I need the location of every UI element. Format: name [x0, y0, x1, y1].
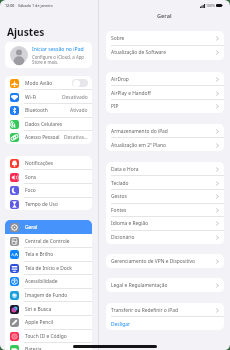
- button[interactable]: Legal e Regulamentação: [106, 278, 224, 292]
- button[interactable]: Gerenciamento de VPN e Dispositivo: [106, 254, 224, 268]
- staticText: Tempo de Uso: [25, 201, 58, 208]
- button[interactable]: PIP: [106, 99, 224, 113]
- button[interactable]: Central de Controle: [5, 234, 92, 248]
- button[interactable]: Data e Hora: [106, 162, 224, 176]
- staticText: Ajustes: [7, 25, 45, 39]
- button[interactable]: Acessibilidade: [5, 274, 92, 288]
- staticText: Dados Celulares: [25, 121, 63, 128]
- staticText: Sobre: [111, 35, 125, 42]
- button[interactable]: Wi-Fi: [5, 90, 92, 104]
- button[interactable]: Touch ID e Código: [5, 329, 92, 343]
- button[interactable]: Transferir ou Redefinir o iPad: [106, 303, 224, 317]
- staticText: Iniciar sessão no iPad: [32, 46, 84, 53]
- button[interactable]: Bluetooth: [5, 103, 92, 117]
- staticText: Notificações: [25, 160, 54, 167]
- button[interactable]: AirPlay e Handoff: [106, 86, 224, 100]
- staticText: Siri e Busca: [25, 306, 52, 313]
- staticText: PIP: [111, 103, 119, 110]
- button[interactable]: Notificações: [5, 156, 92, 170]
- button[interactable]: Tela de Início e Dock: [5, 261, 92, 275]
- staticText: Imagem de Fundo: [25, 292, 68, 299]
- button[interactable]: Idioma e Região: [106, 216, 224, 230]
- staticText: Desativa…: [64, 134, 88, 141]
- button[interactable]: Atualização em 2º Plano: [106, 138, 224, 151]
- button[interactable]: Imagem de Fundo: [5, 288, 92, 302]
- staticText: Idioma e Região: [111, 220, 149, 227]
- staticText: Acesso Pessoal: [25, 134, 60, 141]
- staticText: Wi-Fi: [25, 94, 37, 101]
- button[interactable]: Modo Avião toggle: [72, 79, 88, 87]
- button[interactable]: Dados Celulares: [5, 117, 92, 131]
- staticText: Atualização de Software: [111, 49, 166, 56]
- staticText: Armazenamento do iPad: [111, 128, 168, 135]
- button[interactable]: Foco: [5, 183, 92, 197]
- staticText: Desligar: [111, 321, 130, 328]
- staticText: Sábado 1 de janeiro: [18, 3, 53, 8]
- button[interactable]: Fontes: [106, 203, 224, 217]
- staticText: Teclado: [111, 180, 129, 187]
- button[interactable]: Acesso Pessoal: [5, 130, 92, 144]
- staticText: Central de Controle: [25, 238, 70, 245]
- staticText: Apple Pencil: [25, 319, 54, 326]
- button[interactable]: Tempo de Uso: [5, 197, 92, 210]
- staticText: AirPlay e Handoff: [111, 90, 151, 97]
- button[interactable]: Dicionário: [106, 230, 224, 244]
- staticText: AirDrop: [111, 76, 129, 83]
- staticText: Fontes: [111, 207, 127, 214]
- button[interactable]: Siri e Busca: [5, 302, 92, 316]
- staticText: Legal e Regulamentação: [111, 282, 168, 289]
- button[interactable]: Bateria: [5, 342, 92, 350]
- button[interactable]: Sons: [5, 170, 92, 184]
- staticText: Desativado: [62, 94, 88, 101]
- button[interactable]: Armazenamento do iPad: [106, 124, 224, 138]
- button[interactable]: Sobre: [106, 31, 224, 45]
- button[interactable]: Apple Pencil: [5, 315, 92, 329]
- staticText: Ativado: [70, 107, 88, 114]
- staticText: Bluetooth: [25, 107, 48, 114]
- staticText: Geral: [157, 12, 172, 20]
- staticText: Modo Avião: [25, 80, 53, 87]
- staticText: 100%: [206, 3, 215, 8]
- button[interactable]: Iniciar sessão no iPad: [5, 42, 92, 68]
- staticText: Acessibilidade: [25, 278, 58, 285]
- button[interactable]: Geral: [5, 220, 92, 234]
- button[interactable]: Tela e Brilho: [5, 247, 92, 261]
- button[interactable]: Modo Avião: [5, 76, 92, 90]
- staticText: Atualização em 2º Plano: [111, 142, 167, 149]
- button[interactable]: Desligar: [106, 317, 224, 330]
- staticText: Transferir ou Redefinir o iPad: [111, 307, 179, 314]
- staticText: Gerenciamento de VPN e Dispositivo: [111, 258, 195, 265]
- staticText: Dicionário: [111, 234, 135, 241]
- staticText: Sons: [25, 174, 37, 181]
- staticText: Bateria: [25, 346, 42, 350]
- staticText: Touch ID e Código: [25, 333, 67, 340]
- staticText: 12:00: [5, 3, 15, 8]
- staticText: Tela e Brilho: [25, 251, 54, 258]
- staticText: Data e Hora: [111, 166, 139, 173]
- staticText: Configure o iCloud, a App Store e mais.: [32, 54, 88, 65]
- button[interactable]: Gestos: [106, 189, 224, 203]
- button[interactable]: Atualização de Software: [106, 45, 224, 59]
- staticText: Tela de Início e Dock: [25, 265, 72, 272]
- button[interactable]: Teclado: [106, 176, 224, 190]
- button[interactable]: AirDrop: [106, 72, 224, 86]
- staticText: Geral: [25, 224, 38, 231]
- staticText: Foco: [25, 187, 36, 194]
- staticText: Gestos: [111, 193, 127, 200]
